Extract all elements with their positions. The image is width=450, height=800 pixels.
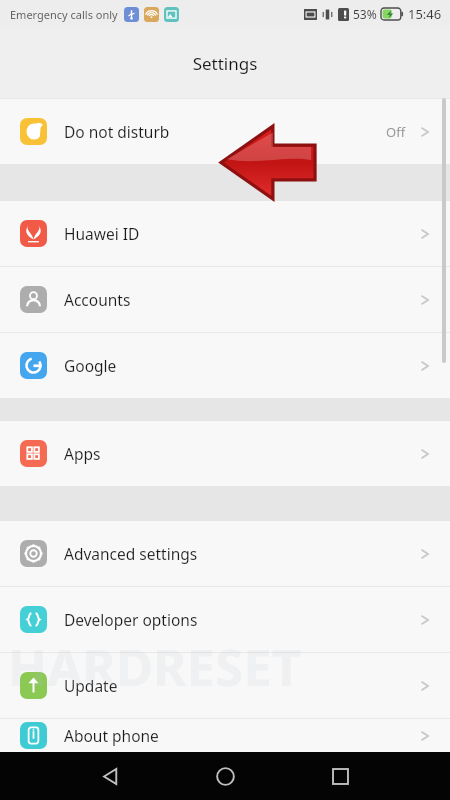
staticText: Developer options — [64, 609, 198, 630]
staticText: Google — [64, 355, 117, 376]
staticText: Do not disturb — [64, 121, 170, 142]
button[interactable]: Google — [0, 333, 450, 398]
button[interactable]: Advanced settings — [0, 521, 450, 586]
button[interactable]: Apps — [0, 421, 450, 486]
staticText: 53% — [353, 6, 377, 22]
staticText: Accounts — [64, 289, 131, 310]
staticText: Off — [386, 123, 406, 141]
button[interactable]: Back — [90, 756, 130, 796]
button[interactable]: Huawei ID — [0, 201, 450, 266]
button[interactable]: Recent apps — [320, 756, 360, 796]
staticText: Settings — [0, 52, 450, 75]
staticText: 15:46 — [408, 5, 442, 23]
staticText: Update — [64, 675, 118, 696]
staticText: HARDRESET — [8, 631, 302, 700]
button[interactable]: Home — [205, 756, 245, 796]
staticText: Advanced settings — [64, 543, 198, 564]
staticText: Apps — [64, 443, 101, 464]
button[interactable]: Accounts — [0, 267, 450, 332]
button[interactable]: Do not disturb — [0, 99, 450, 164]
button[interactable]: Developer options — [0, 587, 450, 652]
button[interactable]: About phone — [0, 719, 450, 752]
staticText: About phone — [64, 725, 159, 746]
button[interactable]: Update — [0, 653, 450, 718]
staticText: Huawei ID — [64, 223, 140, 244]
staticText: Emergency calls only — [10, 7, 118, 22]
